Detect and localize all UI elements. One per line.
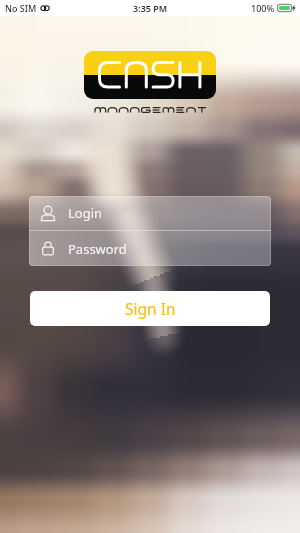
button[interactable]: Sign In (30, 291, 270, 326)
staticText: 3:35 PM (133, 2, 168, 14)
staticText: 100% (251, 2, 275, 14)
button[interactable]: Password (29, 231, 271, 266)
staticText: No SIM (5, 2, 37, 14)
staticText: Login (68, 204, 103, 222)
button[interactable]: Login (29, 196, 271, 230)
staticText: Password (68, 240, 127, 258)
staticText: Sign In (125, 298, 176, 319)
